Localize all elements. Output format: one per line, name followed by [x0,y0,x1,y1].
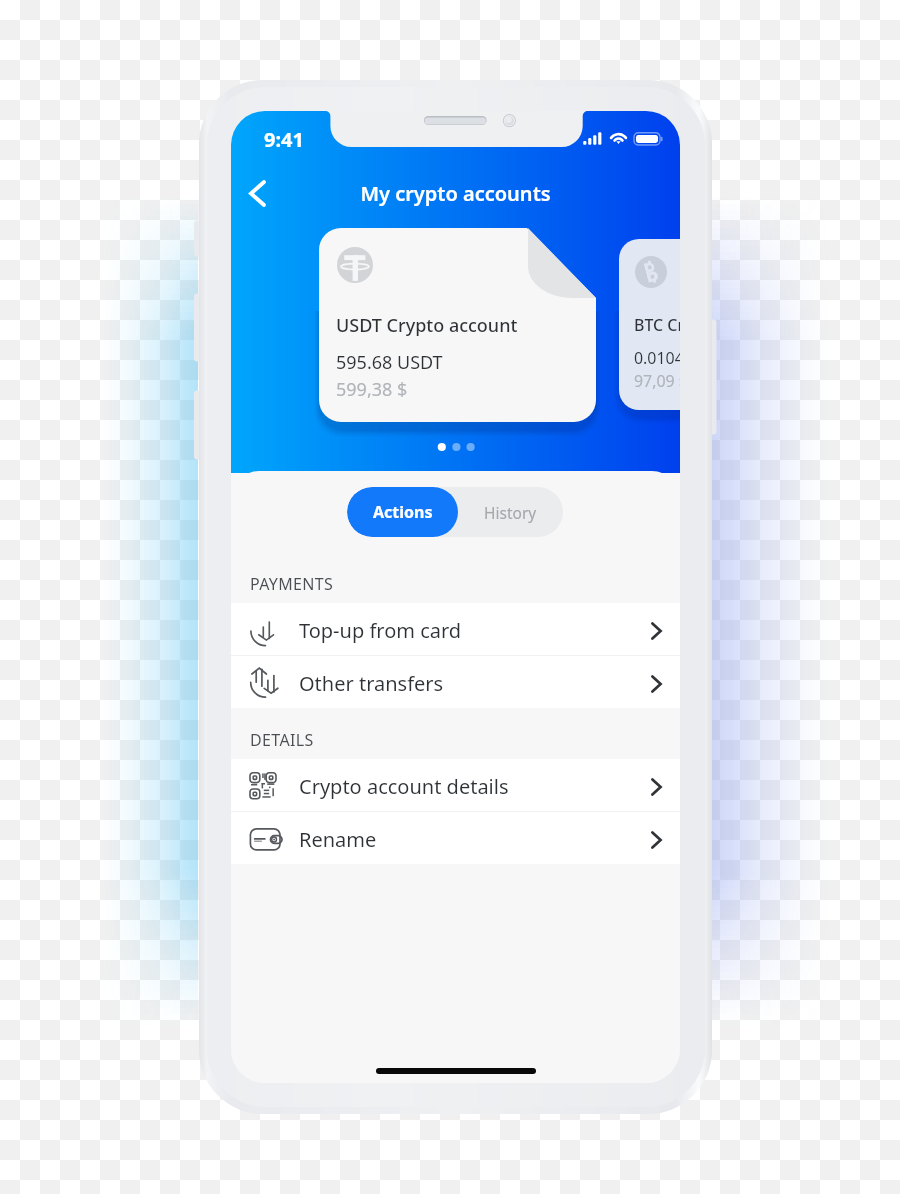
staticText: History [484,502,537,523]
staticText: USDT Crypto account [336,313,518,338]
staticText: Other transfers [299,670,444,697]
button[interactable]: Top-up from card [231,603,680,655]
button[interactable]: Rename [231,812,680,864]
staticText: DETAILS [250,729,314,751]
button[interactable]: Crypto account details [231,759,680,811]
staticText: Rename [299,826,377,853]
button[interactable]: Other transfers [231,656,680,708]
staticText: Crypto account details [299,773,509,800]
button[interactable]: USDT Crypto account [319,228,596,422]
staticText: 97,09 $ [634,370,680,392]
staticText: PAYMENTS [250,573,334,595]
button[interactable]: History [458,487,563,537]
button[interactable]: Actions [347,487,458,537]
staticText: 9:41 [264,126,304,153]
button[interactable]: Back [235,171,279,215]
staticText: 595.68 USDT [336,350,443,375]
staticText: My crypto accounts [231,180,680,207]
staticText: Top-up from card [299,617,462,644]
staticText: 0.010456 BTC [634,347,680,369]
button[interactable]: BTC Crypto account [619,239,680,410]
staticText: Actions [373,501,433,523]
staticText: 599,38 $ [336,377,408,402]
staticText: BTC Crypto account [634,314,680,336]
